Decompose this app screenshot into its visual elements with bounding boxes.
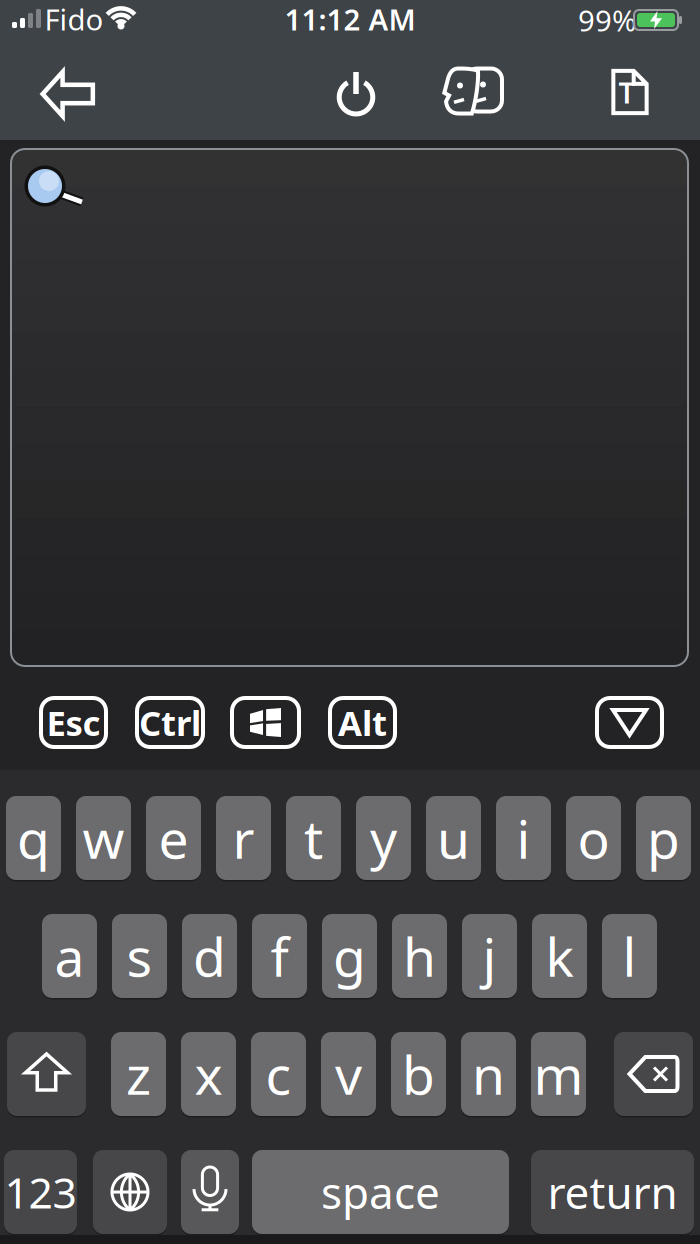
staticText: s: [126, 921, 152, 991]
button[interactable]: Delete: [614, 1032, 693, 1116]
staticText: space: [321, 1163, 440, 1221]
staticText: g: [333, 921, 366, 991]
staticText: p: [647, 803, 680, 873]
button[interactable]: return: [531, 1150, 694, 1234]
button[interactable]: Hide keys: [597, 698, 662, 747]
button[interactable]: space: [252, 1150, 509, 1234]
button[interactable]: n: [461, 1032, 516, 1116]
staticText: return: [547, 1163, 677, 1221]
button[interactable]: y: [356, 796, 411, 880]
staticText: Ctrl: [139, 699, 201, 745]
button[interactable]: f: [252, 914, 307, 998]
button[interactable]: Windows: [232, 698, 299, 747]
button[interactable]: v: [321, 1032, 376, 1116]
staticText: r: [232, 803, 254, 873]
button[interactable]: Text input: [603, 61, 656, 122]
button[interactable]: Back: [31, 61, 105, 127]
button[interactable]: d: [182, 914, 237, 998]
button[interactable]: r: [216, 796, 271, 880]
staticText: t: [304, 803, 323, 873]
staticText: Esc: [46, 699, 100, 745]
staticText: w: [82, 803, 124, 873]
staticText: n: [472, 1039, 505, 1109]
button[interactable]: t: [286, 796, 341, 880]
staticText: 11:12 AM: [284, 0, 415, 38]
staticText: z: [126, 1039, 151, 1109]
button[interactable]: s: [112, 914, 167, 998]
button[interactable]: i: [496, 796, 551, 880]
button[interactable]: a: [42, 914, 97, 998]
staticText: c: [265, 1039, 291, 1109]
staticText: a: [54, 921, 84, 991]
staticText: x: [194, 1039, 222, 1109]
button[interactable]: Control: [137, 698, 203, 747]
button[interactable]: Dictate: [181, 1150, 239, 1234]
button[interactable]: x: [181, 1032, 236, 1116]
button[interactable]: Next keyboard: [93, 1150, 167, 1234]
button[interactable]: Power: [326, 63, 386, 125]
staticText: Alt: [338, 699, 387, 745]
staticText: y: [370, 803, 397, 873]
staticText: e: [158, 803, 188, 873]
button[interactable]: h: [392, 914, 447, 998]
button[interactable]: w: [76, 796, 131, 880]
button[interactable]: k: [532, 914, 587, 998]
staticText: b: [402, 1039, 435, 1109]
staticText: q: [17, 803, 50, 873]
button[interactable]: Alt: [330, 698, 395, 747]
staticText: Fido: [44, 0, 103, 38]
staticText: u: [437, 803, 470, 873]
staticText: o: [577, 803, 609, 873]
staticText: h: [403, 921, 436, 991]
button[interactable]: Escape: [41, 698, 106, 747]
button[interactable]: b: [391, 1032, 446, 1116]
button[interactable]: q: [6, 796, 61, 880]
staticText: 123: [4, 1164, 76, 1220]
staticText: v: [335, 1039, 362, 1109]
staticText: k: [545, 921, 573, 991]
button[interactable]: g: [322, 914, 377, 998]
staticText: f: [270, 921, 288, 991]
button[interactable]: j: [462, 914, 517, 998]
button[interactable]: o: [566, 796, 621, 880]
button[interactable]: l: [602, 914, 657, 998]
staticText: T: [618, 72, 635, 111]
button[interactable]: Displays: [436, 60, 510, 123]
staticText: m: [533, 1039, 583, 1109]
button[interactable]: 123: [4, 1150, 77, 1234]
staticText: d: [193, 921, 226, 991]
button[interactable]: m: [531, 1032, 586, 1116]
staticText: l: [622, 921, 636, 991]
staticText: i: [516, 803, 530, 873]
button[interactable]: p: [636, 796, 691, 880]
button[interactable]: Shift: [7, 1032, 86, 1116]
button[interactable]: e: [146, 796, 201, 880]
staticText: 99%: [578, 0, 636, 39]
button[interactable]: u: [426, 796, 481, 880]
staticText: j: [482, 921, 496, 991]
button[interactable]: c: [251, 1032, 306, 1116]
button[interactable]: z: [111, 1032, 166, 1116]
